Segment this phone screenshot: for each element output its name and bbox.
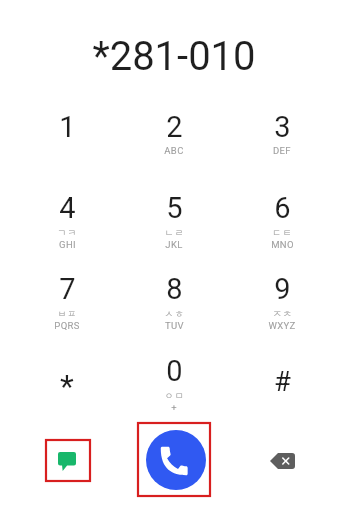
staticText: 9: [274, 272, 291, 306]
staticText: ㅂㅍ: [57, 308, 78, 319]
button[interactable]: #: [228, 344, 336, 425]
staticText: ABC: [164, 145, 184, 156]
button[interactable]: *: [13, 344, 121, 425]
button[interactable]: 6: [228, 181, 336, 262]
staticText: 8: [166, 272, 183, 306]
staticText: ㅅㅎ: [164, 308, 185, 319]
staticText: WXYZ: [268, 320, 296, 331]
staticText: PQRS: [54, 320, 80, 331]
button[interactable]: 0: [120, 344, 228, 425]
staticText: #: [274, 365, 291, 397]
staticText: 4: [59, 191, 76, 225]
staticText: *281-010: [0, 33, 348, 80]
staticText: ㄱㅋ: [57, 227, 78, 238]
staticText: 2: [166, 110, 183, 144]
button[interactable]: Send message: [46, 440, 90, 481]
staticText: +: [171, 402, 177, 413]
button[interactable]: 8: [120, 262, 228, 343]
button[interactable]: 5: [120, 181, 228, 262]
staticText: 0: [166, 354, 183, 388]
button[interactable]: 4: [13, 181, 121, 262]
button[interactable]: 7: [13, 262, 121, 343]
staticText: ㄴㄹ: [164, 227, 185, 238]
button[interactable]: 2: [120, 100, 228, 181]
staticText: JKL: [165, 239, 183, 250]
staticText: TUV: [165, 320, 184, 331]
button[interactable]: 3: [228, 100, 336, 181]
staticText: MNO: [271, 239, 294, 250]
staticText: 6: [274, 191, 291, 225]
staticText: DEF: [273, 145, 291, 156]
button[interactable]: Call: [146, 430, 206, 490]
staticText: 5: [166, 191, 183, 225]
staticText: 3: [274, 110, 291, 144]
staticText: 7: [59, 272, 76, 306]
button[interactable]: Backspace: [262, 441, 302, 481]
button[interactable]: 9: [228, 262, 336, 343]
staticText: ㅈㅊ: [272, 308, 293, 319]
staticText: ㅇㅁ: [164, 390, 185, 401]
staticText: ㄷㅌ: [272, 227, 293, 238]
button[interactable]: 1: [13, 100, 121, 181]
staticText: *: [60, 367, 74, 405]
staticText: 1: [59, 110, 76, 144]
staticText: GHI: [59, 239, 76, 250]
